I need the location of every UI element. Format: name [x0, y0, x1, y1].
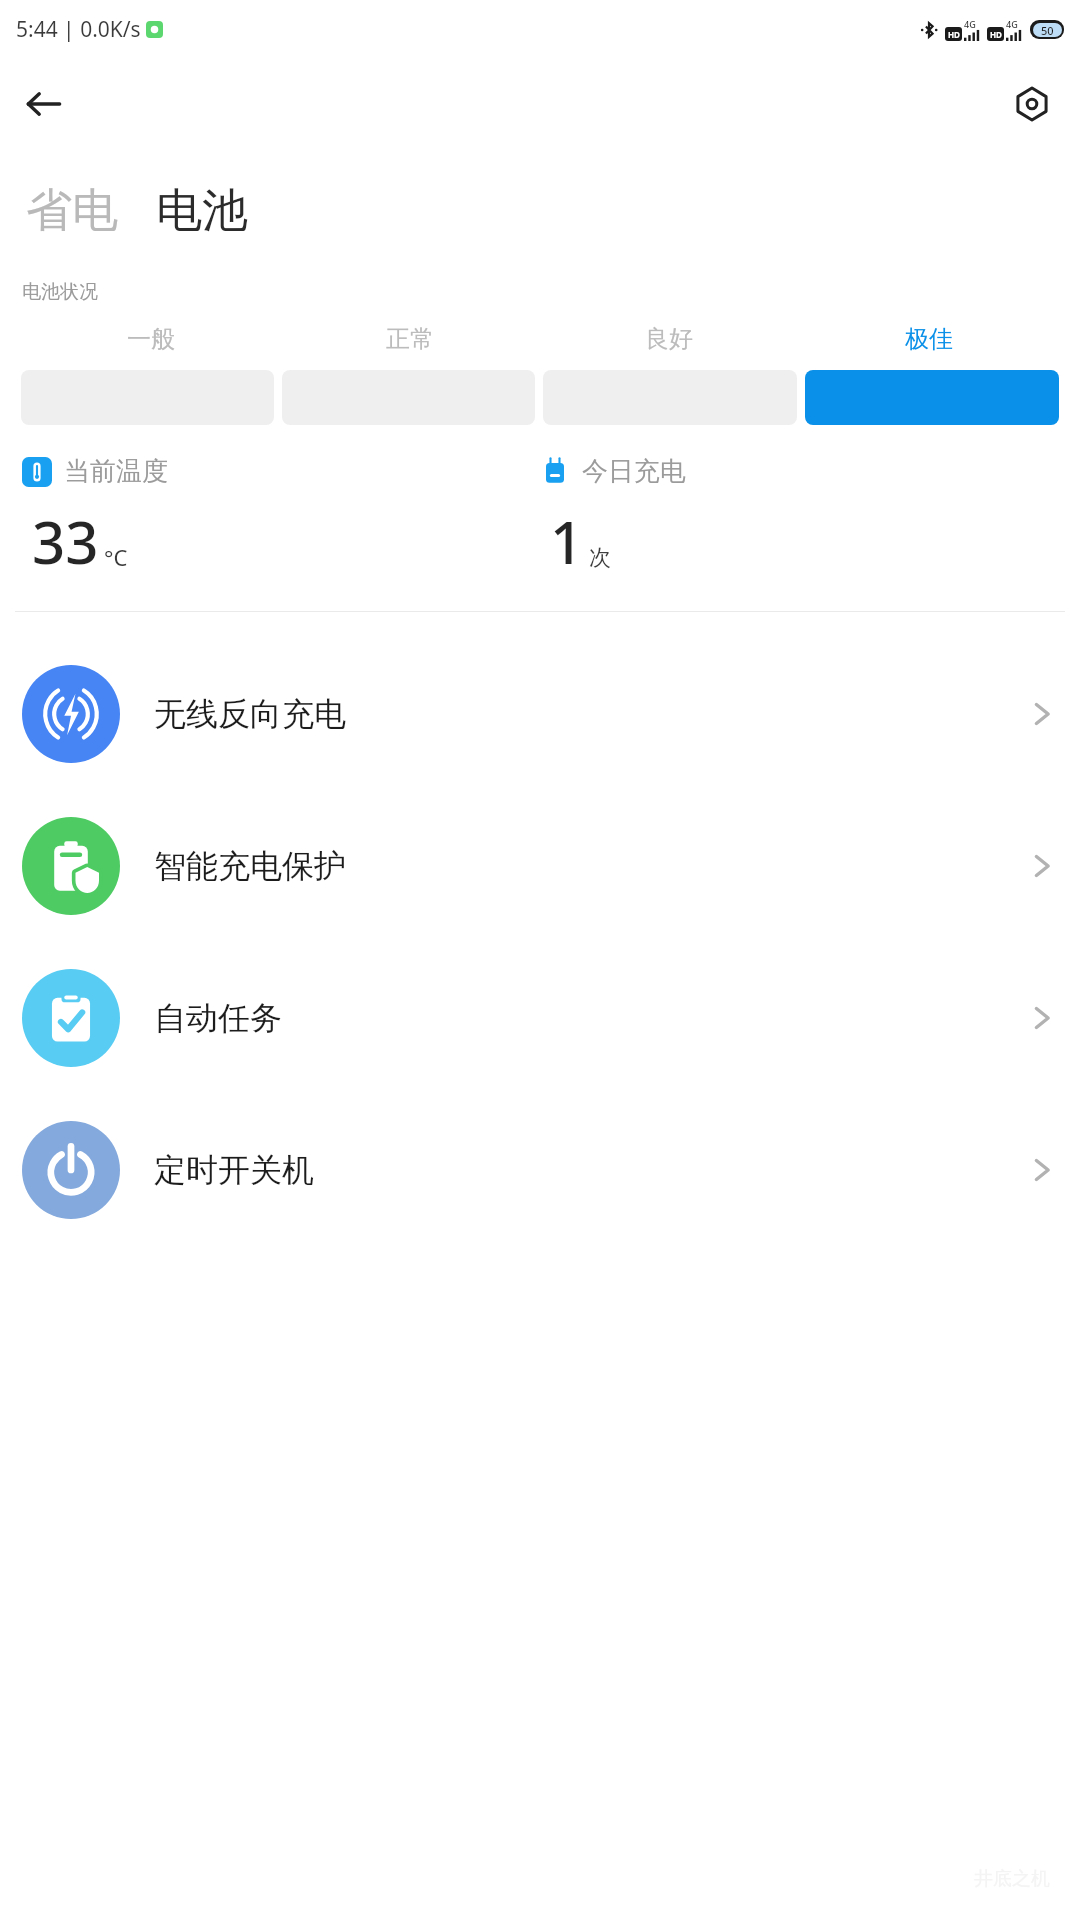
staticText: 一般 [127, 324, 175, 354]
button[interactable]: 自动任务 [0, 942, 1080, 1094]
button[interactable]: 无线反向充电 [0, 638, 1080, 790]
staticText: °C [104, 542, 128, 572]
staticText: 5:44 | 0.0K/s [16, 15, 141, 44]
staticText: 50 [1041, 23, 1054, 37]
staticText: 1 [550, 502, 584, 581]
staticText: 省电 [26, 182, 118, 240]
button[interactable]: Back [14, 74, 74, 134]
button[interactable]: 智能充电保护 [0, 790, 1080, 942]
staticText: HD [948, 29, 960, 40]
staticText: 今日充电 [582, 455, 686, 488]
staticText: 4G [964, 18, 976, 30]
staticText: 自动任务 [154, 998, 1028, 1038]
staticText: HD [990, 29, 1002, 40]
staticText: 井底之机 [974, 1867, 1050, 1891]
staticText: 正常 [386, 324, 434, 354]
staticText: 良好 [645, 324, 693, 354]
staticText: 当前温度 [64, 455, 168, 488]
button[interactable]: Settings [1002, 74, 1062, 134]
button[interactable]: 省电 [22, 180, 122, 242]
button[interactable] [805, 370, 1059, 425]
staticText: 次 [589, 544, 611, 572]
staticText: 极佳 [905, 324, 953, 354]
button[interactable]: 定时开关机 [0, 1094, 1080, 1246]
staticText: 电池状况 [22, 280, 98, 304]
staticText: 无线反向充电 [154, 694, 1028, 734]
staticText: 电池 [156, 182, 248, 240]
staticText: 4G [1006, 18, 1018, 30]
staticText: 定时开关机 [154, 1150, 1028, 1190]
button[interactable]: 电池 [152, 180, 252, 242]
staticText: 智能充电保护 [154, 846, 1028, 886]
staticText: 33 [32, 502, 99, 581]
